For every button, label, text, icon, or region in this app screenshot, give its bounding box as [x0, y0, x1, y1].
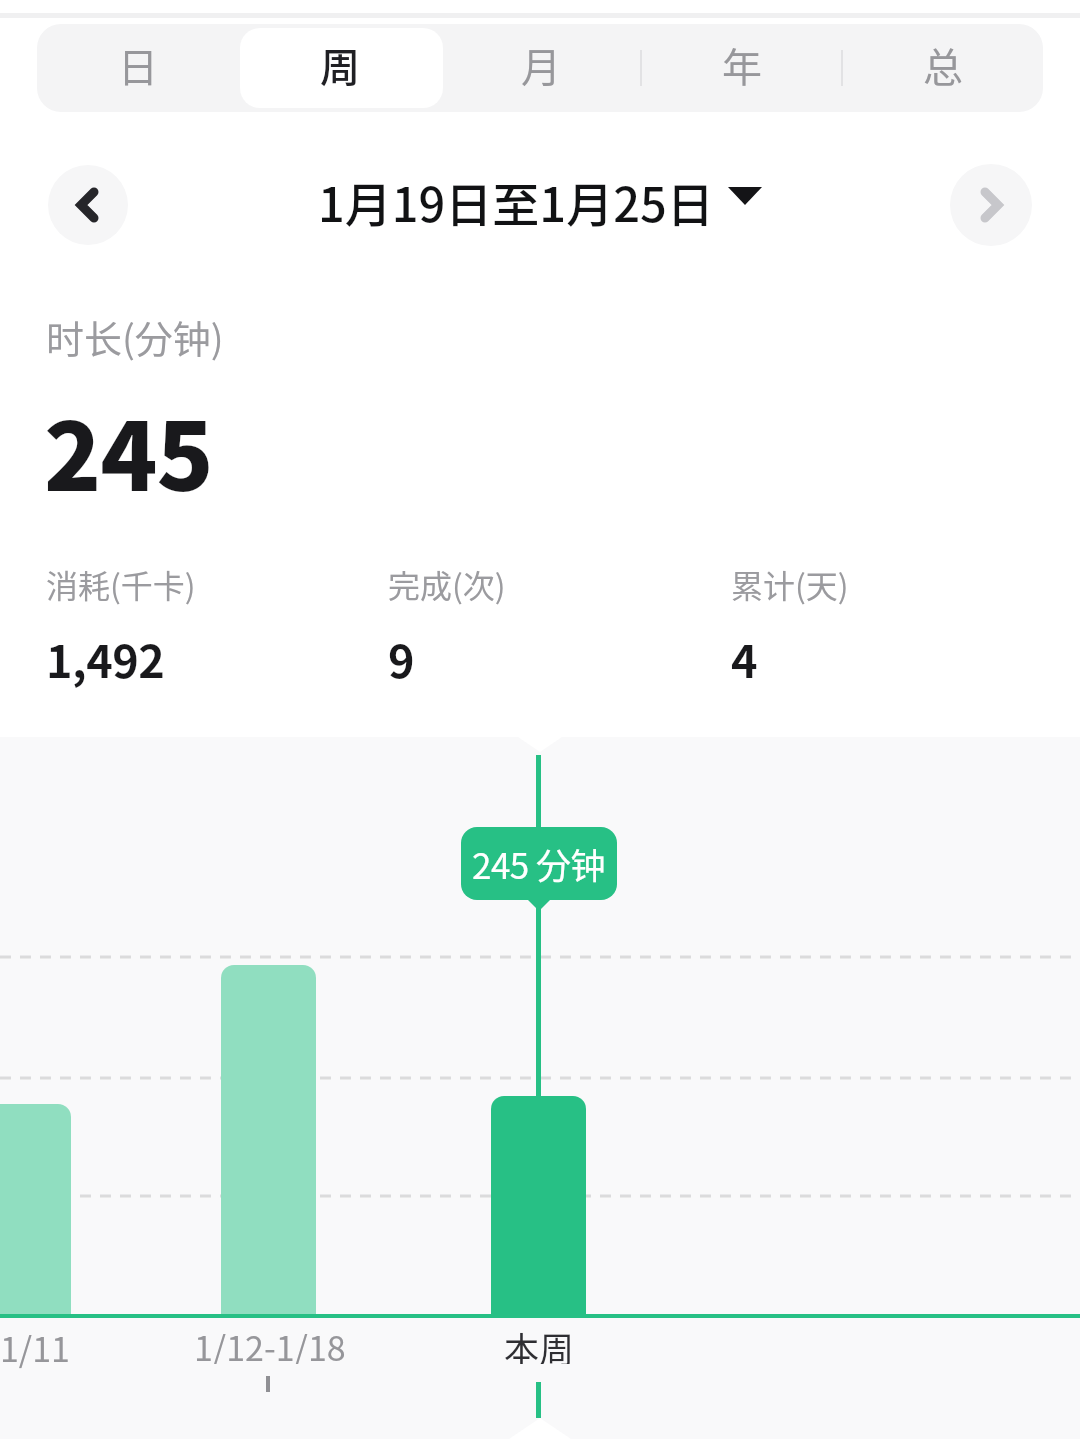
button[interactable]: 年	[641, 24, 842, 112]
button[interactable]: 1月19日至1月25日	[200, 157, 880, 245]
staticText: 消耗(千卡)	[46, 561, 196, 607]
button[interactable]	[48, 165, 128, 245]
staticText: 4	[731, 626, 758, 691]
staticText: 总	[923, 36, 963, 94]
staticText: 完成(次)	[388, 561, 506, 607]
staticText: 1,492	[46, 626, 165, 691]
staticText: 累计(天)	[731, 561, 849, 607]
staticText: 本周	[504, 1322, 575, 1364]
staticText: 9	[388, 626, 415, 691]
staticText: 周	[320, 36, 360, 94]
button[interactable]: 月	[440, 24, 641, 112]
staticText: 月	[521, 36, 561, 94]
button[interactable]: 总	[842, 24, 1043, 112]
staticText: 245	[44, 382, 213, 518]
staticText: 1/11	[0, 1323, 70, 1372]
button[interactable]: 日	[37, 24, 239, 112]
staticText: 日	[118, 36, 158, 94]
button[interactable]	[950, 164, 1032, 246]
staticText: 年	[722, 36, 762, 94]
staticText: 时长(分钟)	[46, 309, 224, 364]
button[interactable]: 周	[239, 24, 440, 112]
staticText: 1/12-1/18	[194, 1322, 346, 1364]
staticText: 245 分钟	[472, 838, 606, 889]
staticText: 1月19日至1月25日	[318, 167, 714, 235]
